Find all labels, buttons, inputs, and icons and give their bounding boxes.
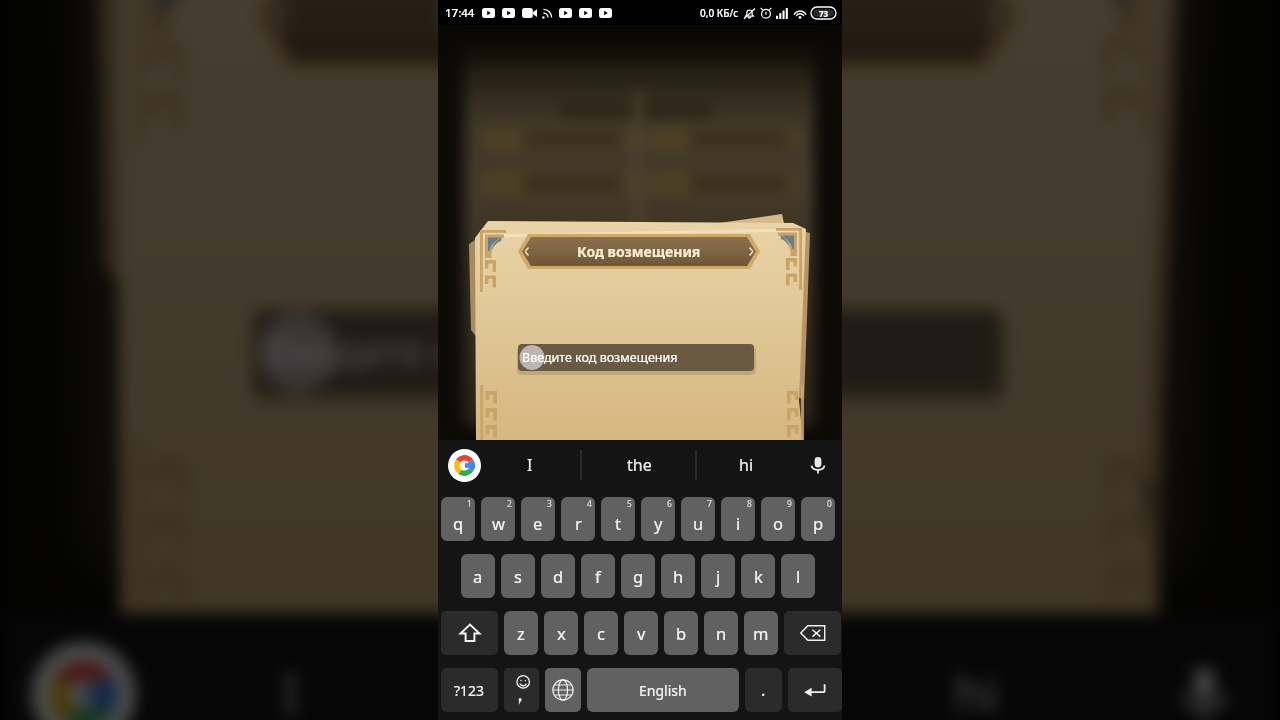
button[interactable]: n [704,611,738,655]
button[interactable]: w [481,497,515,541]
staticText: r [575,512,582,534]
staticText: u [693,512,704,534]
staticText: Код возмещения [440,0,833,46]
button[interactable]: Emoji [504,668,539,712]
staticText: k [754,565,763,587]
button[interactable]: English [587,668,739,712]
button[interactable]: Введите код возмещения [518,344,754,371]
staticText: q [453,512,464,534]
staticText: l [796,565,801,587]
staticText: . [761,679,766,701]
staticText: 8 [747,498,752,510]
staticText: 5 [627,498,632,510]
button[interactable]: j [701,554,735,598]
staticText: m [753,622,769,644]
staticText: 17:44 [445,5,475,21]
staticText: t [615,512,621,534]
button[interactable]: Language [545,668,581,712]
button[interactable]: u [681,497,715,541]
button[interactable]: l [781,554,815,598]
staticText: hi [739,454,754,476]
button[interactable]: z [504,611,538,655]
staticText: 2 [507,498,512,510]
button[interactable]: hi [702,440,790,490]
button[interactable]: h [661,554,695,598]
staticText: 0,0 КБ/с [700,6,739,20]
button[interactable]: y [641,497,675,541]
staticText: n [716,622,727,644]
button[interactable]: q [441,497,475,541]
button[interactable]: c [584,611,618,655]
staticText: 3 [547,498,552,510]
staticText: 73 [819,8,829,19]
button[interactable]: s [501,554,535,598]
button[interactable]: t [601,497,635,541]
button[interactable]: v [624,611,658,655]
staticText: Код возмещения [577,242,701,261]
button[interactable]: e [521,497,555,541]
staticText: f [595,565,601,587]
staticText: g [633,565,644,587]
staticText: a [473,565,483,587]
button[interactable]: Google [448,449,481,482]
staticText: 0 [827,498,832,510]
staticText: w [492,512,505,534]
button[interactable]: ?123 [441,668,498,712]
staticText: s [514,565,522,587]
staticText: the [599,658,678,720]
staticText: hi [954,658,1001,720]
button[interactable]: Enter [788,668,842,712]
staticText: p [813,512,824,534]
staticText: 7 [707,498,712,510]
button[interactable]: Backspace [784,611,841,655]
staticText: 1 [467,498,472,510]
staticText: I [282,658,301,720]
button[interactable]: . [745,668,782,712]
button[interactable]: p [801,497,835,541]
staticText: v [637,622,646,644]
button[interactable]: g [621,554,655,598]
button[interactable]: d [541,554,575,598]
button[interactable]: b [664,611,698,655]
button[interactable]: o [761,497,795,541]
button[interactable]: Voice input [804,451,832,479]
staticText: x [557,622,566,644]
staticText: h [673,565,684,587]
staticText: English [639,681,687,700]
staticText: Введите код возмещения [522,349,678,366]
staticText: b [676,622,687,644]
staticText: I [527,454,533,476]
button[interactable]: Shift [441,611,498,655]
button[interactable]: a [461,554,495,598]
staticText: 6 [667,498,672,510]
staticText: 9 [787,498,792,510]
staticText: ?123 [454,681,485,700]
staticText: e [533,512,543,534]
staticText: y [654,512,663,534]
staticText: 4 [587,498,592,510]
staticText: z [517,622,525,644]
button[interactable]: the [595,440,683,490]
button[interactable]: m [744,611,778,655]
staticText: the [627,454,652,476]
button[interactable]: I [486,440,574,490]
button[interactable]: i [721,497,755,541]
staticText: o [773,512,783,534]
staticText: i [736,512,741,534]
button[interactable]: x [544,611,578,655]
staticText: j [716,565,721,587]
staticText: Введите код возмещения [266,325,760,379]
button[interactable]: f [581,554,615,598]
button[interactable]: r [561,497,595,541]
staticText: d [553,565,564,587]
button[interactable]: k [741,554,775,598]
staticText: c [597,622,605,644]
